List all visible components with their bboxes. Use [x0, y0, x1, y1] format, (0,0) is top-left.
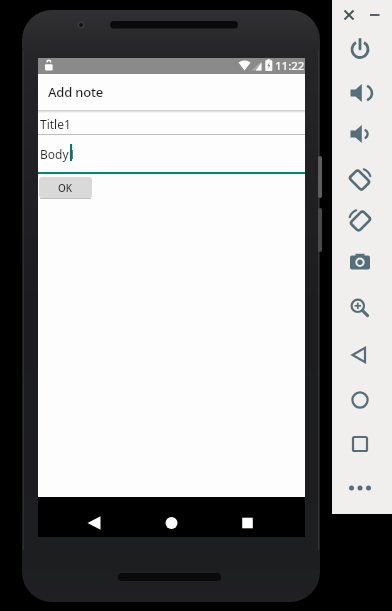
button[interactable]: [340, 380, 380, 420]
staticText: OK: [58, 181, 73, 195]
staticText: Add note: [48, 83, 103, 101]
button[interactable]: [340, 424, 380, 464]
button[interactable]: [340, 6, 358, 24]
staticText: Body1: [40, 146, 76, 162]
button[interactable]: [366, 6, 384, 24]
staticText: 11:22: [275, 58, 305, 74]
button[interactable]: [340, 73, 380, 113]
button[interactable]: [74, 503, 114, 531]
button[interactable]: [340, 242, 380, 282]
button[interactable]: [340, 114, 380, 154]
button[interactable]: [340, 468, 380, 508]
button[interactable]: [151, 503, 191, 531]
staticText: Title1: [40, 116, 71, 132]
button[interactable]: OK: [39, 177, 92, 198]
button[interactable]: [340, 29, 380, 69]
button[interactable]: [340, 288, 380, 328]
button[interactable]: [340, 159, 380, 199]
button[interactable]: [227, 503, 267, 531]
button[interactable]: [340, 200, 380, 240]
button[interactable]: [340, 335, 380, 375]
